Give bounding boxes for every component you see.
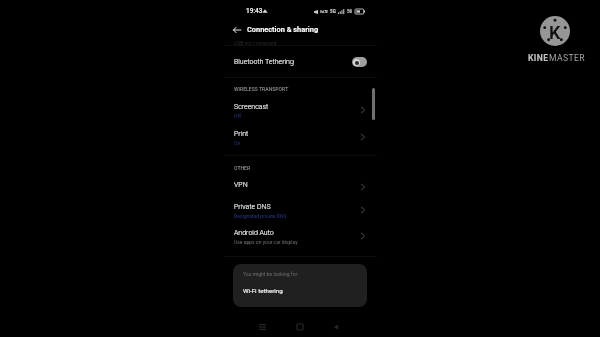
staticText: Use apps on your car display bbox=[234, 239, 298, 245]
staticText: 5G bbox=[330, 9, 336, 14]
button[interactable]: Bluetooth Tethering toggle bbox=[352, 57, 367, 67]
staticText: Print bbox=[234, 130, 249, 138]
staticText: OTHER bbox=[234, 165, 251, 171]
staticText: VPN bbox=[234, 181, 248, 189]
button[interactable]: Screencast bbox=[224, 101, 377, 129]
button[interactable]: Home bbox=[292, 319, 308, 335]
staticText: Wi-Fi tethering bbox=[243, 287, 283, 294]
staticText: Android Auto bbox=[234, 229, 274, 237]
staticText: You might be looking for: bbox=[243, 271, 299, 277]
staticText: 19:43 bbox=[246, 7, 263, 15]
button[interactable]: Back bbox=[328, 319, 344, 335]
staticText: Private DNS bbox=[234, 203, 271, 211]
staticText: K bbox=[549, 22, 561, 43]
staticText: Connection & sharing bbox=[247, 25, 319, 34]
button[interactable]: You might be looking for: bbox=[233, 264, 367, 307]
staticText: 56 bbox=[347, 9, 353, 14]
staticText: Off bbox=[234, 113, 241, 119]
staticText: On bbox=[234, 140, 241, 146]
button[interactable]: Android Auto bbox=[224, 227, 377, 255]
staticText: KINE bbox=[528, 53, 549, 63]
staticText: Screencast bbox=[234, 103, 269, 111]
staticText: USB not connected bbox=[234, 40, 277, 46]
button[interactable]: Bluetooth Tethering bbox=[224, 48, 377, 75]
staticText: Bluetooth Tethering bbox=[234, 58, 294, 66]
button[interactable]: Private DNS bbox=[224, 201, 377, 229]
staticText: WIRELESS TRANSPORT bbox=[234, 86, 289, 92]
button[interactable]: VPN bbox=[224, 179, 377, 201]
staticText: Designated private DNS bbox=[234, 213, 287, 219]
staticText: MASTER bbox=[549, 53, 585, 63]
button[interactable]: Navigate up bbox=[230, 23, 244, 37]
button[interactable]: Print bbox=[224, 128, 377, 156]
button[interactable]: Recent apps bbox=[254, 319, 270, 335]
staticText: VoLTE bbox=[320, 10, 328, 13]
